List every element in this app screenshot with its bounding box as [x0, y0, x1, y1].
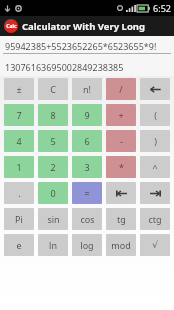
- button[interactable]: 2: [38, 156, 68, 178]
- button[interactable]: *: [106, 156, 136, 178]
- staticText: 9: [84, 109, 90, 121]
- staticText: ±: [16, 83, 22, 95]
- staticText: log: [80, 239, 94, 251]
- button[interactable]: (: [140, 104, 170, 126]
- staticText: mod: [111, 239, 131, 251]
- button[interactable]: ±: [4, 78, 34, 100]
- button[interactable]: √: [140, 234, 170, 256]
- staticText: Calc: [6, 23, 17, 30]
- staticText: cos: [80, 213, 95, 225]
- staticText: 6:52: [153, 2, 171, 14]
- staticText: 8: [50, 109, 56, 121]
- button[interactable]: 9: [72, 104, 102, 126]
- staticText: 2: [50, 161, 56, 173]
- button[interactable]: 0: [38, 182, 68, 204]
- button[interactable]: cos: [72, 208, 102, 230]
- staticText: Pi: [15, 213, 23, 225]
- button[interactable]: Move cursor to end: [140, 182, 170, 204]
- button[interactable]: ctg: [140, 208, 170, 230]
- staticText: ^: [152, 161, 158, 173]
- button[interactable]: +: [106, 104, 136, 126]
- staticText: 0: [50, 187, 56, 199]
- staticText: 4: [16, 135, 22, 147]
- button[interactable]: 1: [4, 156, 34, 178]
- button[interactable]: /: [106, 78, 136, 100]
- button[interactable]: ln: [38, 234, 68, 256]
- staticText: +: [118, 109, 124, 121]
- button[interactable]: sin: [38, 208, 68, 230]
- staticText: tg: [117, 213, 126, 225]
- button[interactable]: 7: [4, 104, 34, 126]
- staticText: /: [119, 83, 123, 95]
- staticText: 3: [84, 161, 90, 173]
- staticText: ): [154, 135, 157, 147]
- button[interactable]: Move cursor to start: [106, 182, 136, 204]
- staticText: C: [50, 83, 56, 95]
- staticText: Calculator With Very Long Numbers: [22, 20, 174, 33]
- button[interactable]: =: [72, 182, 102, 204]
- button[interactable]: -: [106, 130, 136, 152]
- button[interactable]: ): [140, 130, 170, 152]
- button[interactable]: C: [38, 78, 68, 100]
- staticText: n!: [83, 83, 91, 95]
- staticText: √: [152, 240, 158, 250]
- staticText: (: [154, 109, 157, 121]
- staticText: .: [18, 187, 21, 199]
- button[interactable]: tg: [106, 208, 136, 230]
- staticText: 6: [84, 135, 90, 147]
- staticText: =: [84, 187, 90, 199]
- button[interactable]: 3: [72, 156, 102, 178]
- button[interactable]: e: [4, 234, 34, 256]
- button[interactable]: 5: [38, 130, 68, 152]
- staticText: e: [16, 239, 22, 251]
- button[interactable]: Pi: [4, 208, 34, 230]
- button[interactable]: mod: [106, 234, 136, 256]
- staticText: 95942385+5523652265*6523655*9!: [5, 40, 157, 52]
- button[interactable]: 6: [72, 130, 102, 152]
- staticText: ctg: [148, 213, 162, 225]
- staticText: 7: [16, 109, 22, 121]
- button[interactable]: 8: [38, 104, 68, 126]
- staticText: -: [120, 135, 123, 147]
- staticText: 13076163695002849238385: [5, 61, 124, 73]
- button[interactable]: log: [72, 234, 102, 256]
- button[interactable]: ^: [140, 156, 170, 178]
- staticText: 5: [50, 135, 56, 147]
- staticText: *: [119, 161, 124, 173]
- button[interactable]: .: [4, 182, 34, 204]
- staticText: sin: [47, 213, 60, 225]
- button[interactable]: n!: [72, 78, 102, 100]
- staticText: ln: [49, 239, 57, 251]
- button[interactable]: Backspace: [140, 78, 170, 100]
- button[interactable]: 4: [4, 130, 34, 152]
- staticText: 1: [16, 161, 22, 173]
